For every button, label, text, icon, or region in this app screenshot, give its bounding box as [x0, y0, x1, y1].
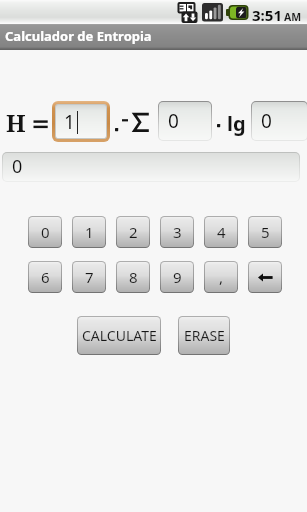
staticText: 4: [217, 222, 226, 242]
staticText: lg: [227, 110, 246, 137]
button[interactable]: 1: [73, 217, 105, 247]
button[interactable]: 2: [117, 217, 149, 247]
staticText: 6: [41, 267, 50, 287]
button[interactable]: 4: [205, 217, 237, 247]
button[interactable]: ERASE: [179, 317, 229, 354]
button[interactable]: Backspace: [249, 262, 281, 292]
staticText: AM: [284, 10, 302, 24]
button[interactable]: 0: [159, 102, 211, 140]
staticText: 0: [261, 108, 272, 134]
staticText: 9: [173, 267, 182, 287]
staticText: 0: [168, 108, 179, 134]
staticText: Calculador de Entropia: [5, 27, 152, 45]
button[interactable]: 0: [3, 153, 299, 181]
button[interactable]: 9: [161, 262, 193, 292]
staticText: 1: [85, 222, 94, 242]
staticText: 3: [173, 222, 182, 242]
button[interactable]: ,: [205, 262, 237, 292]
button[interactable]: 1: [56, 105, 106, 138]
staticText: 3:51: [252, 5, 282, 25]
staticText: 5: [261, 222, 270, 242]
staticText: H: [6, 106, 26, 139]
staticText: 7: [85, 267, 94, 287]
button[interactable]: 0: [29, 217, 61, 247]
staticText: 0: [12, 154, 23, 179]
staticText: 8: [129, 267, 138, 287]
staticText: ERASE: [184, 326, 225, 345]
staticText: 2: [129, 222, 138, 242]
button[interactable]: 8: [117, 262, 149, 292]
button[interactable]: 5: [249, 217, 281, 247]
staticText: CALCULATE: [82, 326, 157, 345]
staticText: ,: [219, 267, 224, 287]
button[interactable]: 6: [29, 262, 61, 292]
button[interactable]: 0: [252, 102, 307, 140]
button[interactable]: 7: [73, 262, 105, 292]
button[interactable]: CALCULATE: [78, 317, 160, 354]
button[interactable]: 3: [161, 217, 193, 247]
staticText: 0: [41, 222, 50, 242]
staticText: 1: [64, 109, 75, 135]
